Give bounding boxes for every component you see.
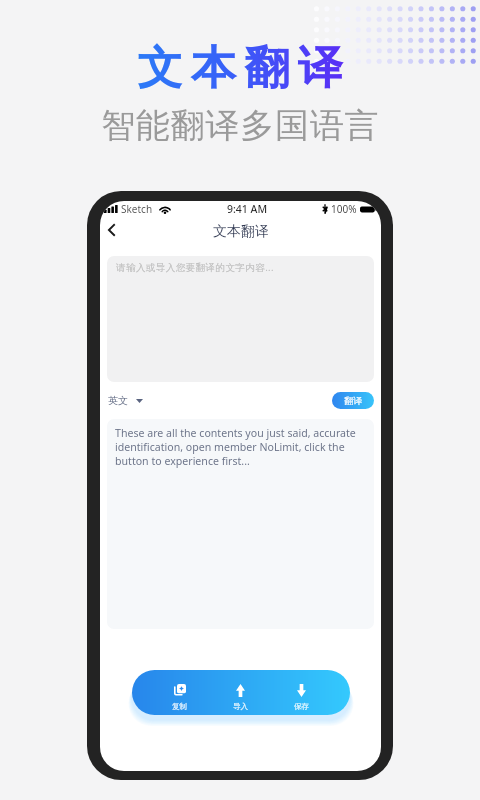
staticText: 请输入或导入您要翻译的文字内容... bbox=[116, 261, 274, 274]
staticText: These are all the contents you just said… bbox=[115, 426, 367, 468]
staticText: 导入 bbox=[233, 702, 249, 712]
button[interactable]: 翻译 bbox=[332, 392, 374, 409]
button[interactable]: Save bbox=[271, 670, 332, 715]
button[interactable]: These are all the contents you just said… bbox=[107, 419, 374, 629]
button[interactable]: 请输入或导入您要翻译的文字内容... bbox=[107, 256, 374, 382]
staticText: 翻译 bbox=[344, 395, 363, 407]
staticText: 文本翻译 bbox=[133, 40, 347, 97]
staticText: 文本翻译 bbox=[213, 223, 269, 241]
button[interactable]: Import bbox=[210, 670, 271, 715]
staticText: 保存 bbox=[294, 702, 310, 712]
staticText: 智能翻译多国语言 bbox=[101, 104, 380, 147]
staticText: 复制 bbox=[172, 702, 188, 712]
button[interactable]: Back bbox=[100, 216, 125, 244]
staticText: 9:41 AM bbox=[227, 202, 268, 216]
button[interactable]: Copy bbox=[150, 670, 210, 715]
staticText: 100% bbox=[331, 202, 357, 216]
staticText: Sketch bbox=[121, 202, 153, 216]
button[interactable]: 英文 bbox=[107, 390, 146, 411]
staticText: 英文 bbox=[108, 394, 128, 407]
